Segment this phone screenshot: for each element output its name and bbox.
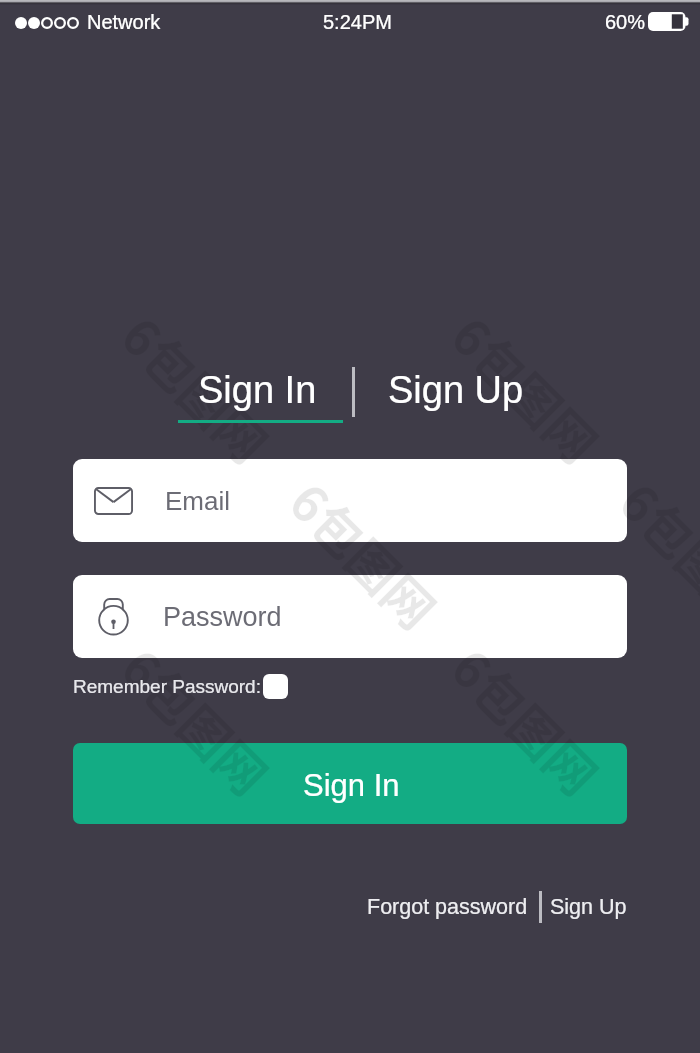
staticText: Sign Up: [388, 369, 524, 411]
button[interactable]: Sign In: [178, 369, 343, 423]
button[interactable]: Remember Password:: [73, 672, 288, 700]
other: Password: [98, 598, 129, 635]
staticText: Remember Password:: [73, 676, 261, 697]
staticText: 6包图网: [276, 465, 454, 643]
staticText: 6包图网: [606, 465, 700, 643]
staticText: 6包图网: [438, 631, 616, 809]
button[interactable]: Email: [73, 459, 627, 542]
staticText: Network: [87, 11, 161, 33]
staticText: 6包图网: [108, 299, 286, 477]
staticText: Sign In: [303, 768, 400, 803]
staticText: 6包图网: [108, 631, 286, 809]
button[interactable]: Sign Up: [550, 895, 627, 919]
other: Signal strength: [15, 17, 79, 29]
staticText: 60%: [605, 11, 646, 33]
button[interactable]: Sign Up: [373, 369, 538, 415]
button[interactable]: Forgot password: [367, 895, 528, 919]
staticText: Sign In: [198, 369, 317, 411]
button[interactable]: Password: [73, 575, 627, 658]
staticText: 6包图网: [438, 299, 616, 477]
other: Email: [94, 487, 133, 515]
other: Battery 60 percent: [648, 12, 689, 31]
staticText: Password: [163, 602, 282, 632]
button[interactable]: Sign In: [73, 743, 627, 824]
staticText: Email: [165, 486, 231, 515]
staticText: 5:24PM: [323, 11, 392, 33]
